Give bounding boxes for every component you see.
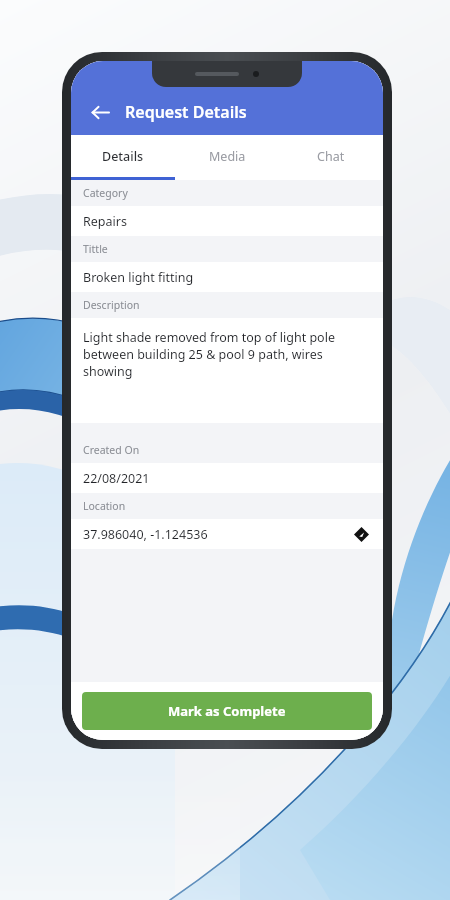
button[interactable]: Details <box>71 135 175 177</box>
button[interactable]: Light shade removed from top of light po… <box>71 318 383 423</box>
staticText: Tittle <box>83 242 108 256</box>
staticText: Repairs <box>83 213 127 230</box>
button[interactable]: Mark as Complete <box>82 692 372 730</box>
staticText: 22/08/2021 <box>83 470 150 487</box>
button[interactable]: Open location in maps <box>351 524 371 544</box>
button[interactable]: 37.986040, -1.124536 <box>71 519 383 549</box>
staticText: Light shade removed from top of light po… <box>83 329 369 380</box>
button[interactable]: Repairs <box>71 206 383 236</box>
staticText: 37.986040, -1.124536 <box>83 526 208 543</box>
staticText: Mark as Complete <box>168 702 286 720</box>
staticText: Description <box>83 298 140 312</box>
staticText: Media <box>209 148 246 165</box>
button[interactable]: Back <box>83 95 117 129</box>
staticText: Created On <box>83 443 140 457</box>
staticText: Location <box>83 499 126 513</box>
button[interactable]: 22/08/2021 <box>71 463 383 493</box>
button[interactable]: Broken light fitting <box>71 262 383 292</box>
staticText: Details <box>102 148 144 165</box>
staticText: Request Details <box>125 101 247 123</box>
button[interactable]: Media <box>175 135 279 177</box>
staticText: Broken light fitting <box>83 269 194 286</box>
staticText: Chat <box>317 148 345 165</box>
staticText: Category <box>83 186 128 200</box>
button[interactable]: Chat <box>279 135 383 177</box>
